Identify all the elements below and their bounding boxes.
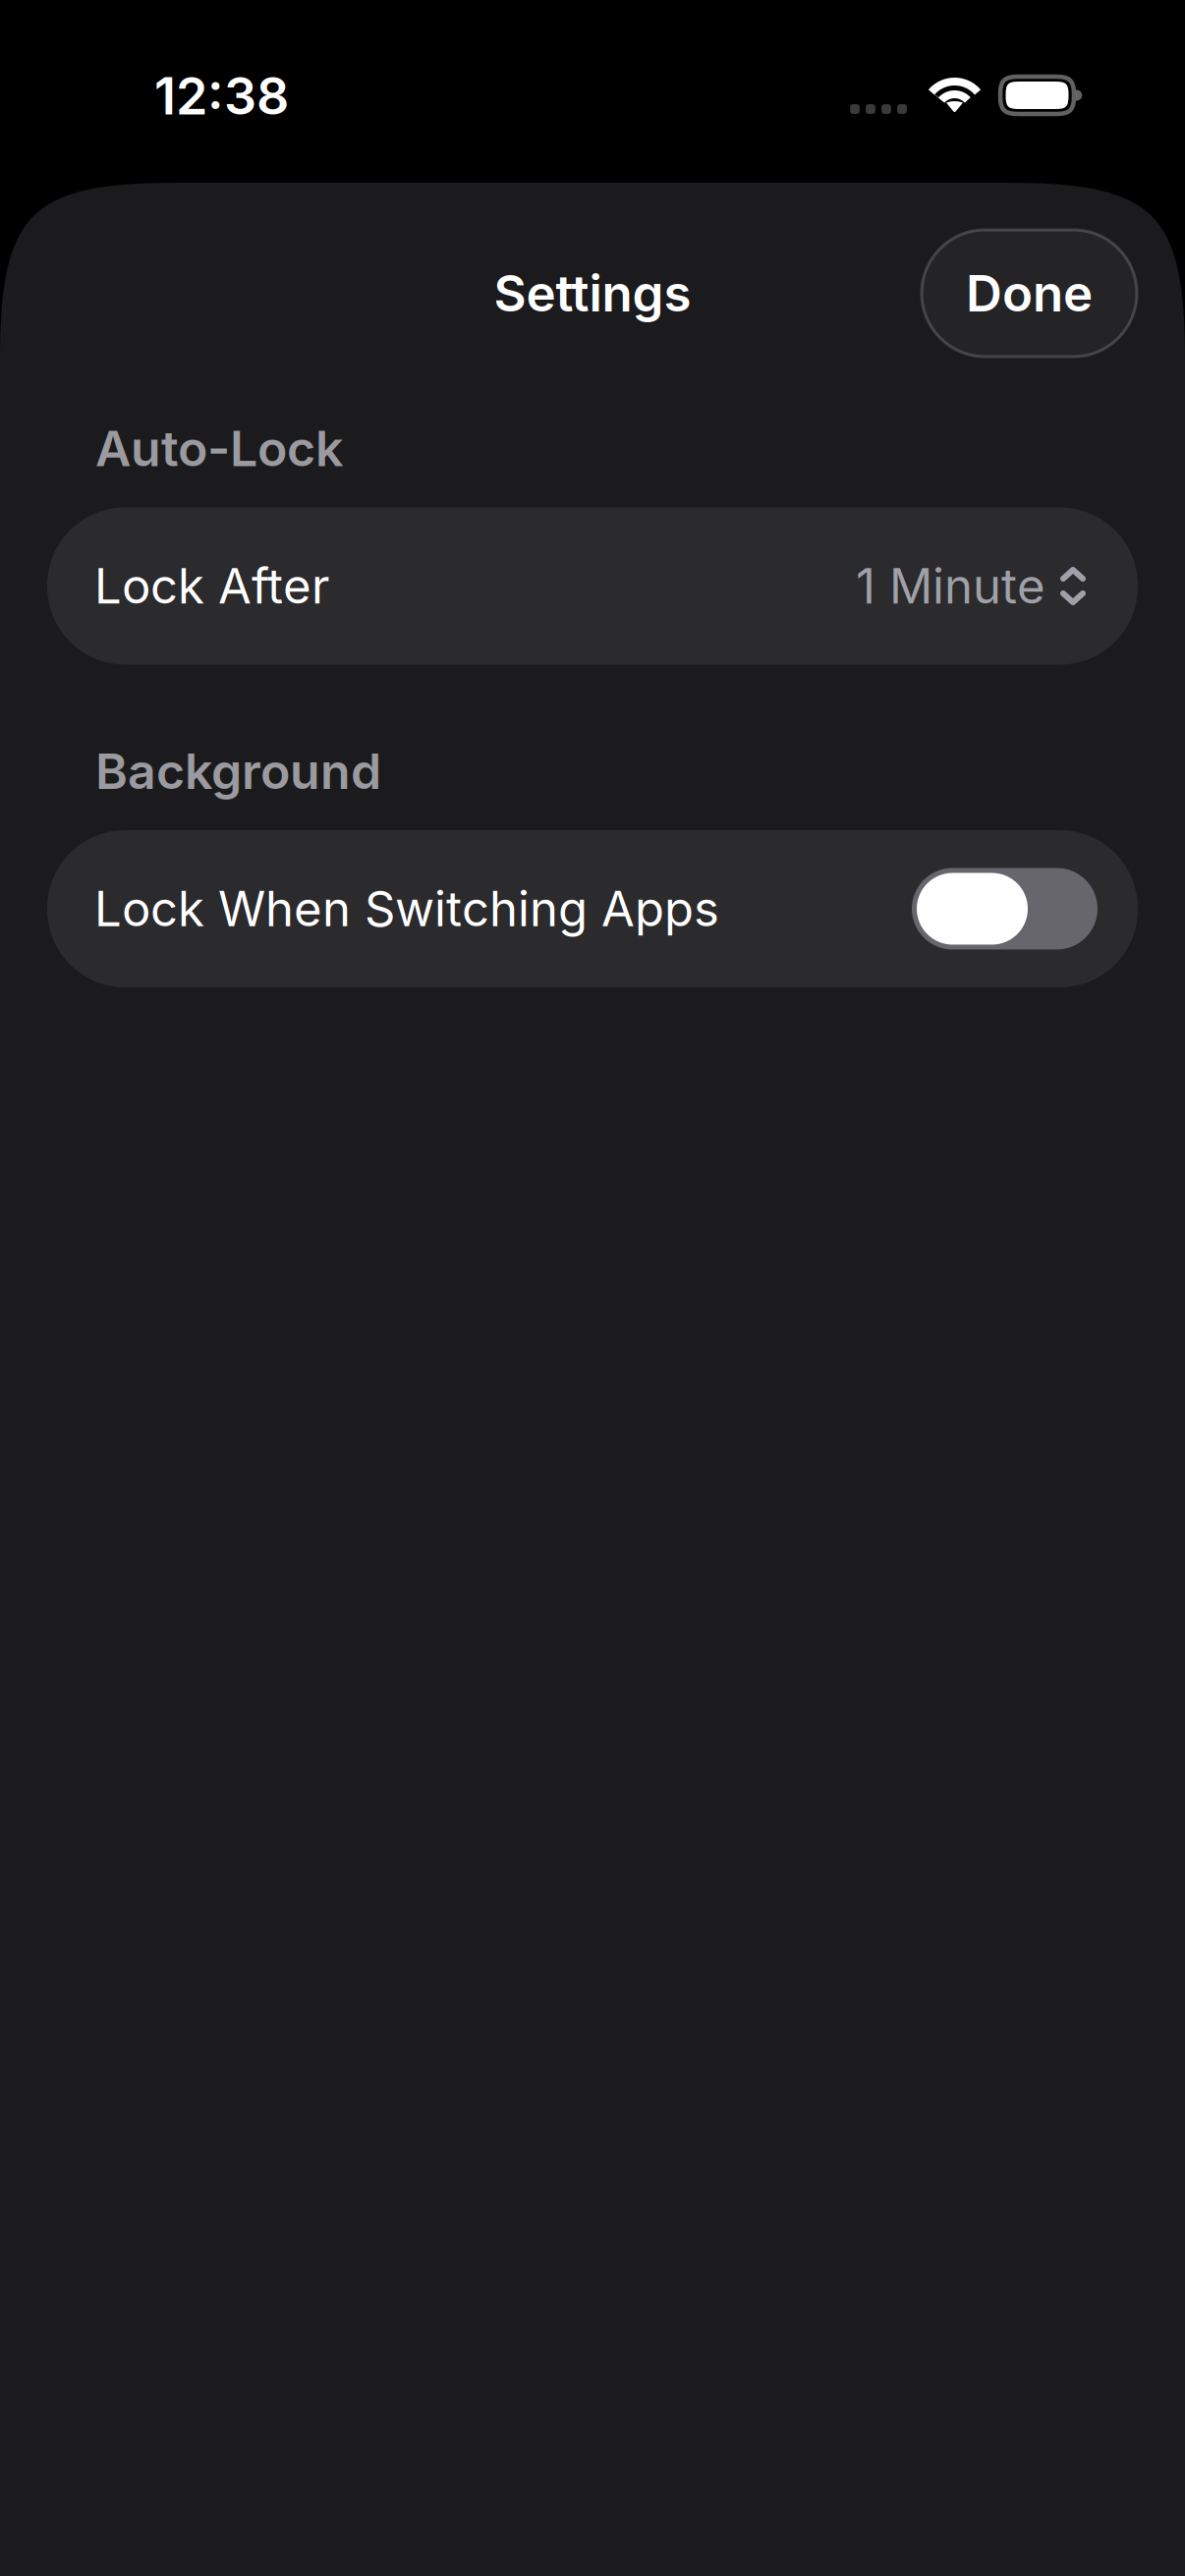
staticText: Auto-Lock bbox=[95, 419, 343, 478]
staticText: Settings bbox=[494, 263, 691, 324]
staticText: Lock When Switching Apps bbox=[94, 880, 719, 938]
button[interactable]: Done bbox=[922, 230, 1137, 357]
button[interactable]: Lock When Switching Apps bbox=[47, 830, 1138, 987]
staticText: 1 Minute bbox=[856, 557, 1045, 615]
staticText: 12:38 bbox=[154, 65, 289, 127]
button[interactable]: Lock After bbox=[47, 507, 1138, 665]
staticText: Background bbox=[95, 741, 381, 801]
staticText: Lock After bbox=[94, 557, 329, 615]
staticText: Done bbox=[966, 263, 1093, 324]
